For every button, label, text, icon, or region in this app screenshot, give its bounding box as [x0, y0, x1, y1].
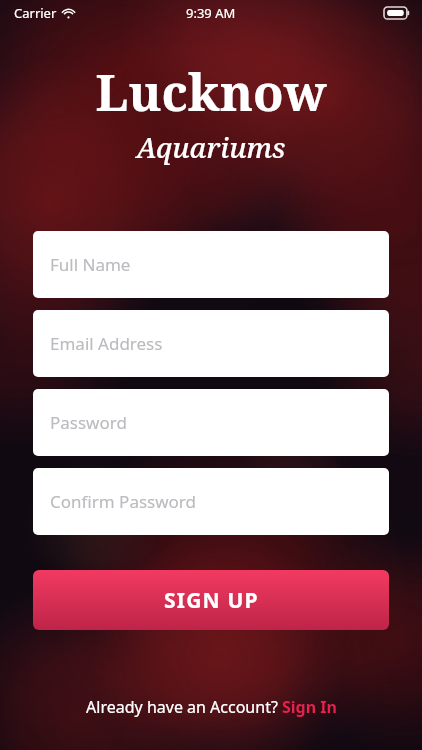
button[interactable]: Confirm Password: [33, 468, 389, 535]
staticText: Carrier: [14, 4, 57, 22]
staticText: Aquariums: [136, 128, 286, 166]
button[interactable]: Full Name: [33, 231, 389, 298]
staticText: SIGN UP: [164, 586, 259, 615]
staticText: Confirm Password: [50, 490, 196, 513]
staticText: Lucknow: [95, 58, 327, 126]
staticText: Full Name: [50, 253, 131, 276]
staticText: Already have an Account? Sign In: [86, 696, 337, 718]
staticText: 9:39 AM: [186, 4, 236, 22]
button[interactable]: SIGN UP: [33, 570, 389, 630]
button[interactable]: Already have an Account? Sign In: [0, 682, 422, 732]
button[interactable]: Email Address: [33, 310, 389, 377]
staticText: Email Address: [50, 332, 163, 355]
button[interactable]: Password: [33, 389, 389, 456]
staticText: Password: [50, 411, 127, 434]
